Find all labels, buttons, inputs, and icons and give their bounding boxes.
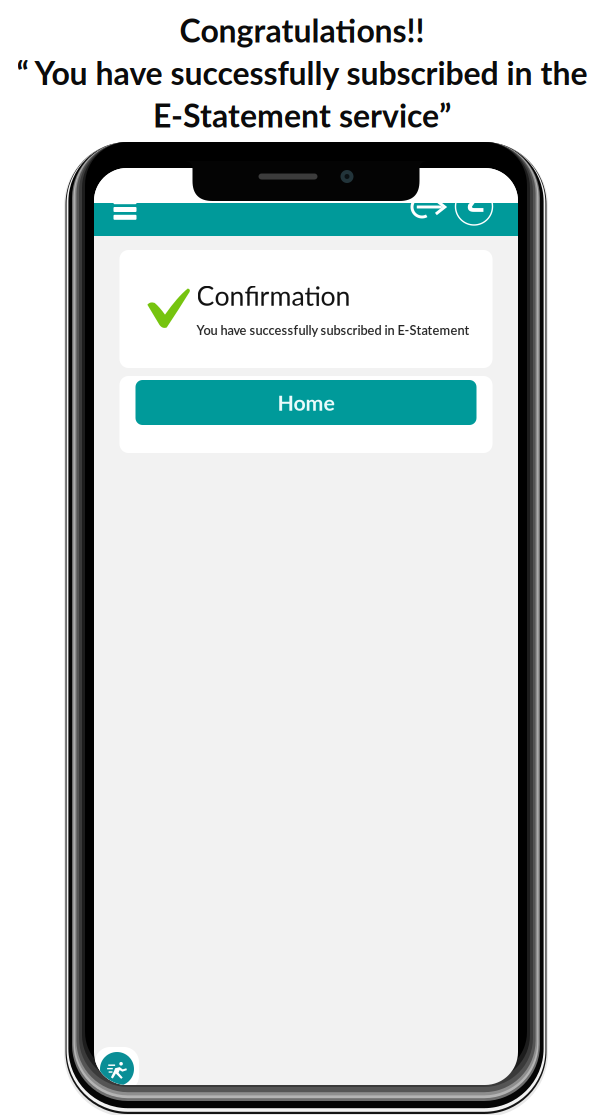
staticText: Confirmation (196, 279, 350, 311)
staticText: Home (277, 390, 334, 415)
staticText: E-Statement service” (153, 96, 451, 134)
button[interactable]: Home (135, 380, 476, 425)
staticText: Congratulations!! (179, 11, 424, 49)
staticText: You have successfully subscribed in E-St… (196, 322, 469, 338)
button[interactable]: Switch language to Arabic (452, 190, 496, 223)
staticText: “ You have successfully subscribed in th… (16, 53, 587, 92)
button[interactable]: Sign out (405, 190, 449, 223)
button[interactable]: Menu (103, 193, 147, 226)
button[interactable]: Activity (95, 1047, 139, 1091)
